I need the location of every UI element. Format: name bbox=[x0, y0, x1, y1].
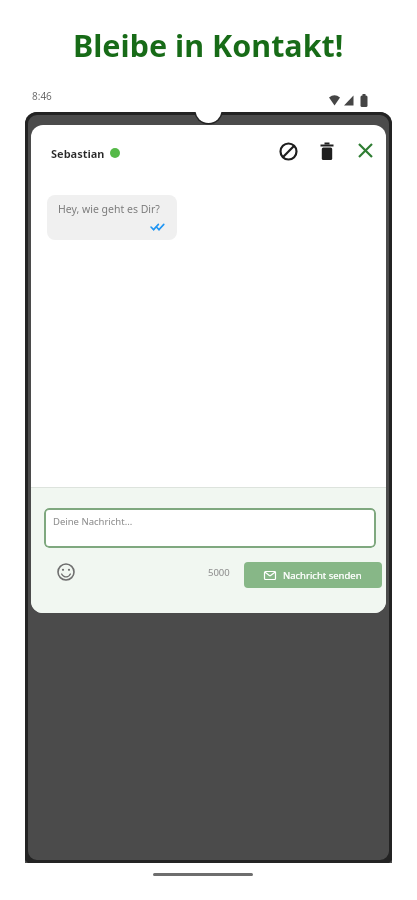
button[interactable] bbox=[358, 143, 373, 158]
staticText: Hey, wie geht es Dir? bbox=[58, 202, 160, 216]
staticText: 5000 bbox=[208, 566, 230, 579]
button[interactable]: Hey, wie geht es Dir? bbox=[47, 195, 177, 240]
button[interactable] bbox=[320, 142, 334, 161]
button[interactable] bbox=[57, 563, 75, 581]
staticText: 8:46 bbox=[32, 89, 52, 103]
button[interactable]: Nachricht senden bbox=[244, 562, 382, 588]
staticText: Deine Nachricht... bbox=[53, 515, 133, 528]
button[interactable] bbox=[279, 142, 298, 161]
staticText: Nachricht senden bbox=[283, 569, 362, 582]
staticText: Bleibe in Kontakt! bbox=[73, 24, 344, 64]
button[interactable]: Deine Nachricht... bbox=[44, 508, 376, 548]
staticText: Sebastian bbox=[51, 146, 105, 161]
